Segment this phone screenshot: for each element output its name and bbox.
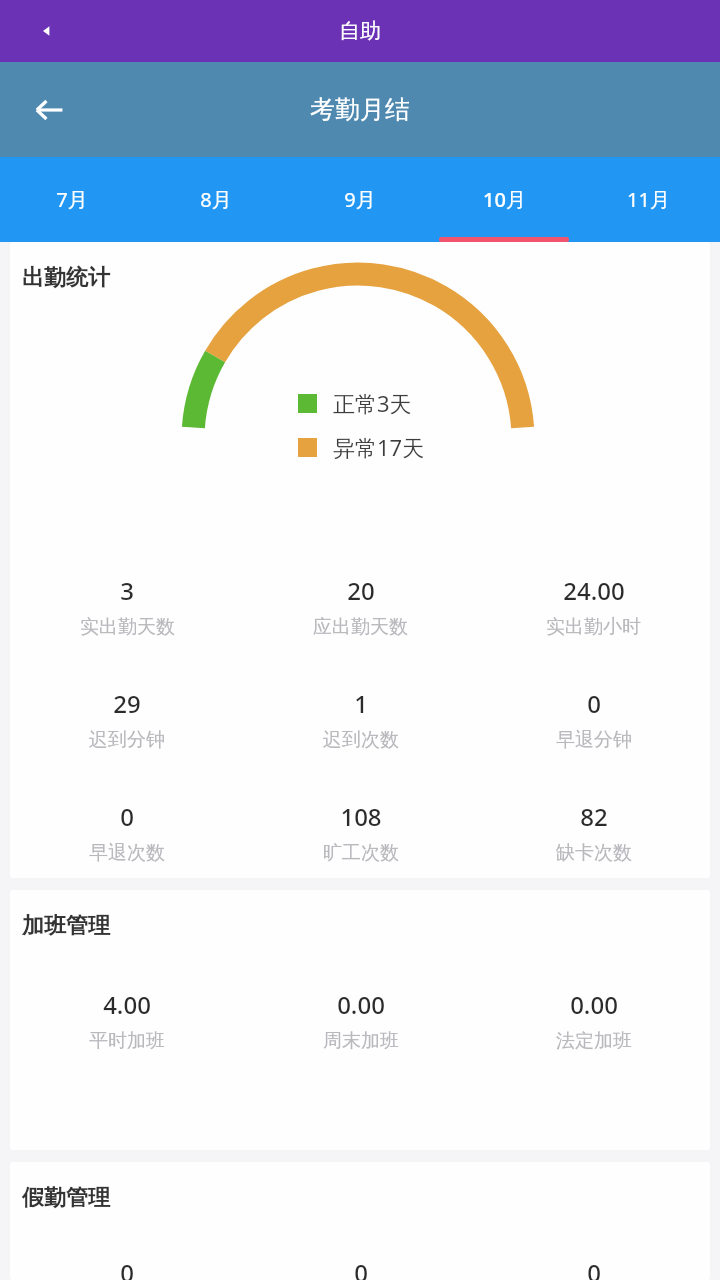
staticText: 缺卡次数 [556, 841, 632, 865]
staticText: 0 [120, 800, 134, 833]
button[interactable]: 0.00 [244, 988, 477, 1053]
staticText: 4.00 [103, 988, 151, 1021]
staticText: 正常3天 [333, 388, 412, 418]
staticText: 20 [347, 574, 375, 607]
staticText: 周末加班 [323, 1029, 399, 1053]
staticText: 1 [354, 687, 368, 720]
button[interactable]: 0.00 [477, 988, 710, 1053]
button[interactable]: 0 [477, 687, 710, 752]
staticText: 法定加班 [556, 1029, 632, 1053]
staticText: 早退次数 [89, 841, 165, 865]
staticText: 0 [354, 1256, 368, 1280]
staticText: 0 [587, 1256, 601, 1280]
staticText: 自助 [339, 18, 381, 44]
staticText: 出勤统计 [22, 264, 110, 292]
button[interactable]: 4.00 [10, 988, 244, 1053]
staticText: 82 [580, 800, 608, 833]
staticText: 平时加班 [89, 1029, 165, 1053]
staticText: 9月 [344, 186, 376, 213]
button[interactable]: Back [30, 14, 64, 48]
button[interactable]: 0 [244, 1256, 477, 1280]
staticText: 实出勤小时 [546, 615, 641, 639]
staticText: 考勤月结 [310, 94, 410, 125]
staticText: 11月 [627, 186, 670, 213]
staticText: 10月 [483, 186, 526, 213]
staticText: 假勤管理 [22, 1184, 110, 1212]
staticText: 异常17天 [333, 432, 425, 462]
button[interactable]: 29 [10, 687, 244, 752]
staticText: 应出勤天数 [313, 615, 408, 639]
button[interactable]: 10月 [432, 157, 576, 242]
staticText: 29 [113, 687, 141, 720]
button[interactable]: Back [22, 83, 76, 137]
button[interactable]: 1 [244, 687, 477, 752]
button[interactable]: 9月 [288, 157, 432, 242]
staticText: 3 [120, 574, 134, 607]
button[interactable]: 8月 [144, 157, 288, 242]
staticText: 旷工次数 [323, 841, 399, 865]
button[interactable]: 0 [477, 1256, 710, 1280]
staticText: 24.00 [563, 574, 625, 607]
staticText: 8月 [200, 186, 232, 213]
staticText: 0.00 [337, 988, 385, 1021]
button[interactable]: 20 [244, 574, 477, 639]
staticText: 实出勤天数 [80, 615, 175, 639]
staticText: 7月 [56, 186, 88, 213]
staticText: 0 [587, 687, 601, 720]
button[interactable]: 7月 [0, 157, 144, 242]
button[interactable]: 3 [10, 574, 244, 639]
staticText: 0 [120, 1256, 134, 1280]
staticText: 0.00 [570, 988, 618, 1021]
staticText: 108 [340, 800, 382, 833]
button[interactable]: 108 [244, 800, 477, 865]
staticText: 早退分钟 [556, 728, 632, 752]
button[interactable]: 82 [477, 800, 710, 865]
staticText: 迟到次数 [323, 728, 399, 752]
button[interactable]: 0 [10, 800, 244, 865]
staticText: 加班管理 [22, 912, 110, 940]
button[interactable]: 11月 [576, 157, 720, 242]
button[interactable]: 0 [10, 1256, 244, 1280]
staticText: 迟到分钟 [89, 728, 165, 752]
button[interactable]: 24.00 [477, 574, 710, 639]
